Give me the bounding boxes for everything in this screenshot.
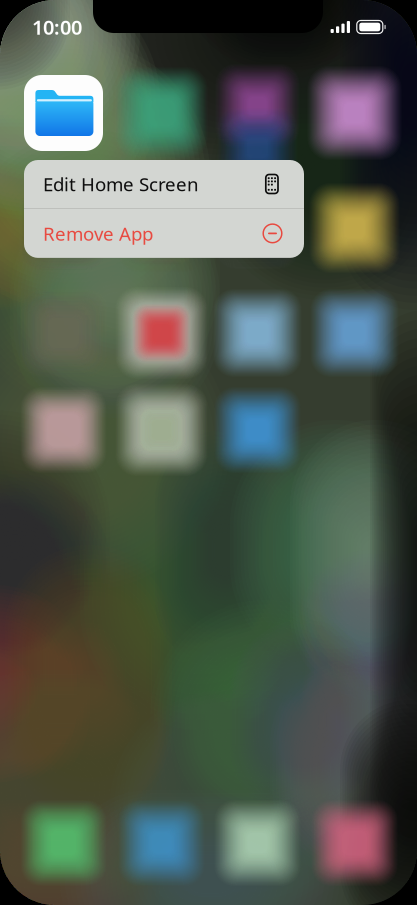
staticText: Edit Home Screen — [43, 172, 199, 196]
button[interactable]: Remove App — [24, 209, 304, 258]
staticText: Remove App — [43, 221, 153, 246]
button[interactable]: Edit Home Screen — [24, 160, 304, 208]
staticText: 10:00 — [32, 14, 82, 40]
